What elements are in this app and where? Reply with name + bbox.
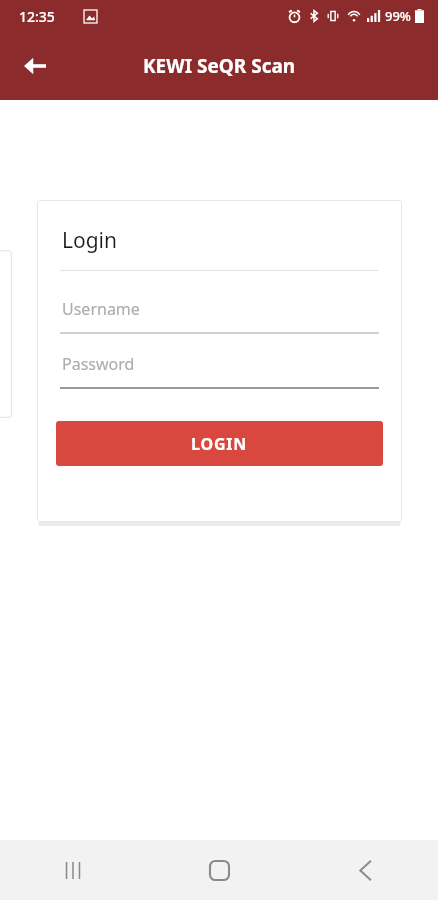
staticText: 99% [385, 7, 411, 25]
staticText: Login [62, 226, 118, 255]
staticText: 12:35 [19, 7, 55, 26]
button[interactable]: Home [146, 840, 292, 900]
button[interactable]: LOGIN [56, 421, 383, 466]
button[interactable]: Back [14, 45, 56, 87]
button[interactable]: Recent apps [0, 840, 146, 900]
button[interactable]: Password [37, 353, 402, 389]
staticText: Password [62, 353, 135, 375]
button[interactable]: Back [292, 840, 438, 900]
staticText: LOGIN [191, 433, 248, 455]
button[interactable]: Username [37, 298, 402, 334]
staticText: Username [62, 298, 140, 320]
staticText: KEWI SeQR Scan [143, 53, 296, 79]
